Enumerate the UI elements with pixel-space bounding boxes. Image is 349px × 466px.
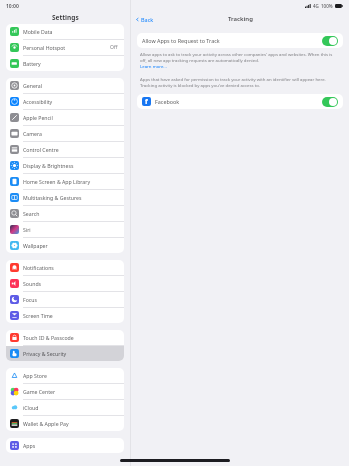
button[interactable]: Accessibility <box>6 94 124 109</box>
staticText: General <box>23 82 120 89</box>
button[interactable]: Toggle <box>322 36 338 46</box>
staticText: Touch ID & Passcode <box>23 334 120 341</box>
staticText: 10:00 <box>6 3 19 10</box>
button[interactable]: Multitasking & Gestures <box>6 190 124 205</box>
staticText: 4G <box>313 3 319 9</box>
staticText: Mobile Data <box>23 28 120 35</box>
button[interactable]: General <box>6 78 124 93</box>
button[interactable]: Search <box>6 206 124 221</box>
staticText: Game Center <box>23 388 120 395</box>
button[interactable]: Apple Pencil <box>6 110 124 125</box>
staticText: Off <box>110 44 118 51</box>
staticText: f <box>145 97 148 106</box>
button[interactable]: Wallet & Apple Pay <box>6 416 124 431</box>
staticText: Camera <box>23 130 120 137</box>
button[interactable]: Siri <box>6 222 124 237</box>
button[interactable]: Toggle <box>322 97 338 107</box>
staticText: Wallpaper <box>23 242 120 249</box>
staticText: Siri <box>23 226 120 233</box>
staticText: Apple Pencil <box>23 114 120 121</box>
button[interactable]: Allow Apps to Request to Track <box>137 33 343 48</box>
button[interactable]: App Store <box>6 368 124 383</box>
button[interactable]: Mobile Data <box>6 24 124 39</box>
staticText: Multitasking & Gestures <box>23 194 120 201</box>
other: Back <box>135 17 140 22</box>
staticText: Control Centre <box>23 146 120 153</box>
staticText: Home Screen & App Library <box>23 178 120 185</box>
staticText: Notifications <box>23 264 120 271</box>
staticText: Sounds <box>23 280 120 287</box>
staticText: Screen Time <box>23 312 120 319</box>
button[interactable]: Touch ID & Passcode <box>6 330 124 345</box>
staticText: Facebook <box>155 98 322 105</box>
staticText: iCloud <box>23 404 120 411</box>
staticText: Tracking <box>228 15 253 23</box>
staticText: Battery <box>23 60 120 67</box>
button[interactable]: Wallpaper <box>6 238 124 253</box>
staticText: Allow apps to ask to track your activity… <box>140 51 340 63</box>
button[interactable]: Display & Brightness <box>6 158 124 173</box>
staticText: Settings <box>52 13 79 22</box>
button[interactable]: Focus <box>6 292 124 307</box>
button[interactable]: Screen Time <box>6 308 124 323</box>
staticText: Accessibility <box>23 98 120 105</box>
staticText: Allow Apps to Request to Track <box>142 37 322 44</box>
button[interactable]: Home Screen & App Library <box>6 174 124 189</box>
button[interactable]: Learn more... <box>140 63 167 69</box>
button[interactable]: Control Centre <box>6 142 124 157</box>
button[interactable]: iCloud <box>6 400 124 415</box>
button[interactable]: Privacy & Security <box>6 346 124 361</box>
button[interactable]: Camera <box>6 126 124 141</box>
staticText: Focus <box>23 296 120 303</box>
staticText: Apps that have asked for permission to t… <box>140 76 340 88</box>
button[interactable]: f <box>137 94 343 109</box>
staticText: Search <box>23 210 120 217</box>
staticText: Privacy & Security <box>23 350 120 357</box>
button[interactable]: Sounds <box>6 276 124 291</box>
button[interactable]: Notifications <box>6 260 124 275</box>
button[interactable]: Personal Hotspot <box>6 40 124 55</box>
staticText: Display & Brightness <box>23 162 120 169</box>
button[interactable]: Game Center <box>6 384 124 399</box>
button[interactable]: Battery <box>6 56 124 71</box>
staticText: App Store <box>23 372 120 379</box>
staticText: Back <box>141 16 154 23</box>
button[interactable]: Apps <box>6 438 124 453</box>
staticText: 100% <box>321 3 333 9</box>
staticText: Apps <box>23 442 120 449</box>
staticText: Wallet & Apple Pay <box>23 420 120 427</box>
staticText: Personal Hotspot <box>23 44 110 51</box>
button[interactable]: Back <box>135 16 154 23</box>
